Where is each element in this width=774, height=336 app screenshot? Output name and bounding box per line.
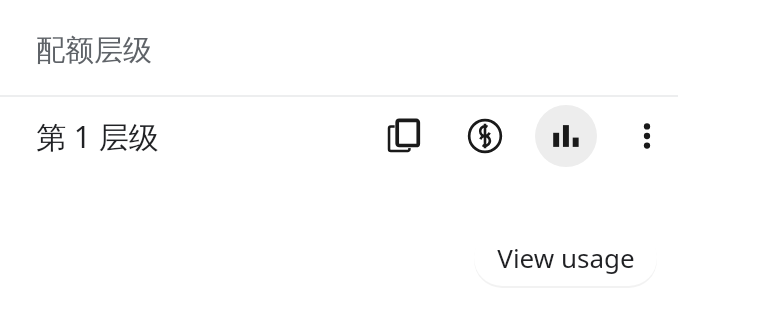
button[interactable]: More options: [616, 105, 678, 167]
staticText: View usage: [497, 240, 635, 275]
button[interactable]: View usage: [535, 105, 597, 167]
staticText: 配额层级: [36, 32, 152, 69]
button[interactable]: View usage: [474, 229, 657, 286]
staticText: 第 1 层级: [36, 116, 159, 157]
button[interactable]: Copy: [373, 105, 435, 167]
button[interactable]: Pricing: [454, 105, 516, 167]
